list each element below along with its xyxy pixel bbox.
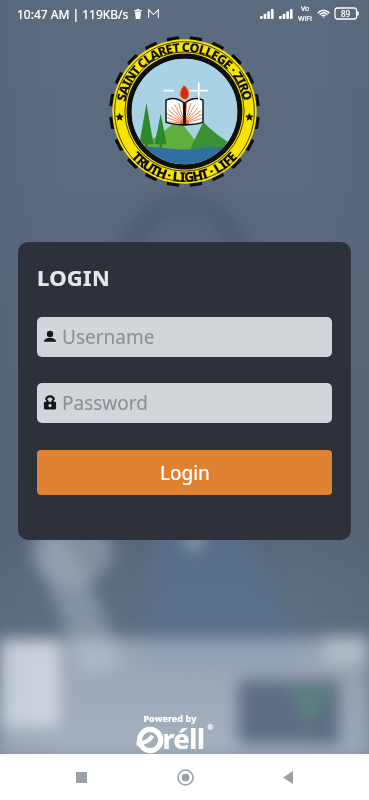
- staticText: Vo: [301, 4, 310, 14]
- staticText: 89: [341, 8, 351, 19]
- button[interactable]: Back: [266, 755, 310, 799]
- button[interactable]: Password: [37, 383, 332, 423]
- staticText: WiFi: [298, 14, 312, 24]
- button[interactable]: Username: [37, 317, 332, 357]
- staticText: Username: [62, 324, 155, 350]
- button[interactable]: Login: [37, 450, 332, 495]
- button[interactable]: Recents: [59, 755, 103, 799]
- button[interactable]: Home: [163, 755, 207, 799]
- staticText: Password: [62, 390, 148, 416]
- staticText: 10:47 AM | 119KB/s: [17, 6, 129, 22]
- staticText: LOGIN: [37, 262, 111, 292]
- staticText: Login: [160, 460, 210, 486]
